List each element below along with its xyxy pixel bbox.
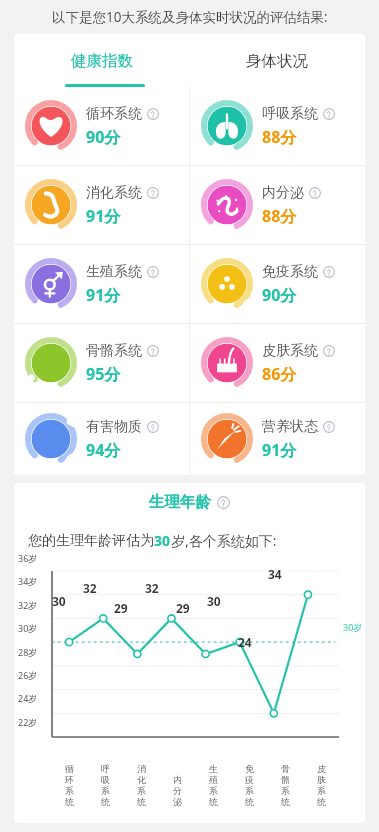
staticText: 吸 <box>101 774 110 785</box>
staticText: 免 <box>245 763 254 774</box>
staticText: 系 <box>317 785 326 796</box>
staticText: 疫 <box>245 774 254 785</box>
staticText: 生 <box>209 763 218 774</box>
staticText: 24 <box>238 634 252 650</box>
staticText: 以下是您10大系统及身体实时状况的评估结果: <box>52 8 328 26</box>
staticText: 统 <box>245 796 254 807</box>
staticText: 88分 <box>262 205 297 227</box>
staticText: 统 <box>281 796 290 807</box>
staticText: 88分 <box>262 126 297 148</box>
button[interactable]: 帮助 <box>217 496 230 509</box>
staticText: 内分泌 <box>262 184 304 202</box>
staticText: 统 <box>209 796 218 807</box>
staticText: 90分 <box>262 284 297 306</box>
staticText: 身体状况 <box>246 51 308 71</box>
staticText: 30 <box>207 593 221 609</box>
button[interactable]: 内分泌 <box>190 166 365 244</box>
staticText: 呼 <box>101 763 110 774</box>
staticText: 消化系统 <box>86 184 142 202</box>
button[interactable]: 营养状态 <box>190 403 365 475</box>
staticText: 皮 <box>317 763 326 774</box>
staticText: 消 <box>137 763 146 774</box>
staticText: 生理年龄 <box>149 492 211 512</box>
staticText: 呼吸系统 <box>262 105 318 123</box>
staticText: 34岁 <box>18 575 38 587</box>
staticText: 循环系统 <box>86 105 142 123</box>
staticText: 36岁 <box>18 552 38 564</box>
staticText: 岁,各个系统如下: <box>171 531 277 550</box>
staticText: 您的生理年龄评估为 <box>28 532 154 550</box>
staticText: 29 <box>114 600 128 616</box>
staticText: 30 <box>154 531 171 550</box>
staticText: 28岁 <box>18 646 38 658</box>
staticText: 30岁 <box>343 621 363 633</box>
staticText: 环 <box>65 774 74 785</box>
staticText: 系 <box>101 785 110 796</box>
button[interactable]: 免疫系统 <box>190 245 365 323</box>
staticText: 统 <box>65 796 74 807</box>
staticText: 系 <box>137 785 146 796</box>
staticText: 系 <box>281 785 290 796</box>
button[interactable]: 呼吸系统 <box>190 87 365 165</box>
staticText: 泌 <box>173 796 182 807</box>
staticText: 系 <box>245 785 254 796</box>
staticText: 32 <box>145 580 159 596</box>
staticText: 32岁 <box>18 599 38 611</box>
staticText: 30岁 <box>18 622 38 634</box>
button[interactable]: 身体状况 <box>189 34 365 87</box>
staticText: 肤 <box>317 774 326 785</box>
button[interactable]: 健康指数 <box>14 34 189 87</box>
staticText: 30 <box>52 593 66 609</box>
staticText: 骨 <box>281 763 290 774</box>
staticText: 生殖系统 <box>86 263 142 281</box>
staticText: 91分 <box>86 284 121 306</box>
staticText: 22岁 <box>18 716 38 728</box>
staticText: 免疫系统 <box>262 263 318 281</box>
staticText: 有害物质 <box>86 418 142 436</box>
staticText: 皮肤系统 <box>262 342 318 360</box>
button[interactable]: 消化系统 <box>14 166 189 244</box>
staticText: 24岁 <box>18 692 38 704</box>
staticText: 26岁 <box>18 669 38 681</box>
staticText: 91分 <box>262 439 297 461</box>
button[interactable]: 循环系统 <box>14 87 189 165</box>
staticText: 循 <box>65 763 74 774</box>
button[interactable]: 皮肤系统 <box>190 324 365 402</box>
staticText: 统 <box>137 796 146 807</box>
staticText: 95分 <box>86 363 121 385</box>
button[interactable]: 骨骼系统 <box>14 324 189 402</box>
staticText: 系 <box>65 785 74 796</box>
staticText: 化 <box>137 774 146 785</box>
staticText: 91分 <box>86 205 121 227</box>
button[interactable]: 生殖系统 <box>14 245 189 323</box>
staticText: 29 <box>176 600 190 616</box>
staticText: 营养状态 <box>262 418 318 436</box>
staticText: 健康指数 <box>71 51 133 71</box>
staticText: 内 <box>173 774 182 785</box>
staticText: 32 <box>83 580 97 596</box>
staticText: 86分 <box>262 363 297 385</box>
staticText: 34 <box>268 566 282 582</box>
button[interactable]: 有害物质 <box>14 403 189 475</box>
staticText: 94分 <box>86 439 121 461</box>
staticText: 骨骼系统 <box>86 342 142 360</box>
staticText: 90分 <box>86 126 121 148</box>
staticText: 殖 <box>209 774 218 785</box>
staticText: 骼 <box>281 774 290 785</box>
staticText: 分 <box>173 785 182 796</box>
staticText: 统 <box>101 796 110 807</box>
staticText: 系 <box>209 785 218 796</box>
staticText: 统 <box>317 796 326 807</box>
